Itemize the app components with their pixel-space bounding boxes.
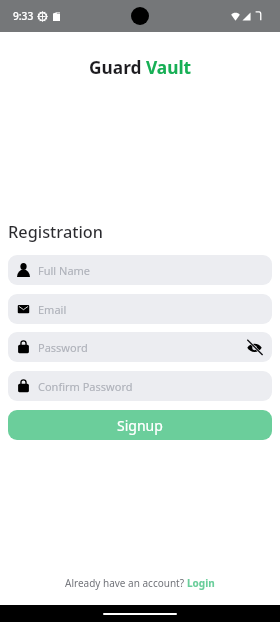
button[interactable]: Toggle password visibility	[242, 335, 266, 359]
staticText: Confirm Password	[38, 379, 133, 394]
button[interactable]: Login	[187, 576, 215, 590]
button[interactable]: Signup	[8, 410, 272, 440]
button[interactable]: Email	[8, 294, 272, 324]
staticText: Already have an account?	[65, 576, 185, 590]
button[interactable]: Password	[8, 332, 272, 362]
staticText: Guard Vault	[89, 56, 192, 80]
staticText: 9:33	[13, 9, 34, 23]
staticText: Email	[38, 302, 67, 317]
button[interactable]: Confirm Password	[8, 371, 272, 401]
staticText: Signup	[117, 416, 163, 435]
staticText: Password	[38, 340, 88, 355]
staticText: Full Name	[38, 263, 91, 278]
staticText: Login	[187, 576, 215, 590]
button[interactable]: Full Name	[8, 255, 272, 285]
staticText: Registration	[8, 221, 104, 243]
